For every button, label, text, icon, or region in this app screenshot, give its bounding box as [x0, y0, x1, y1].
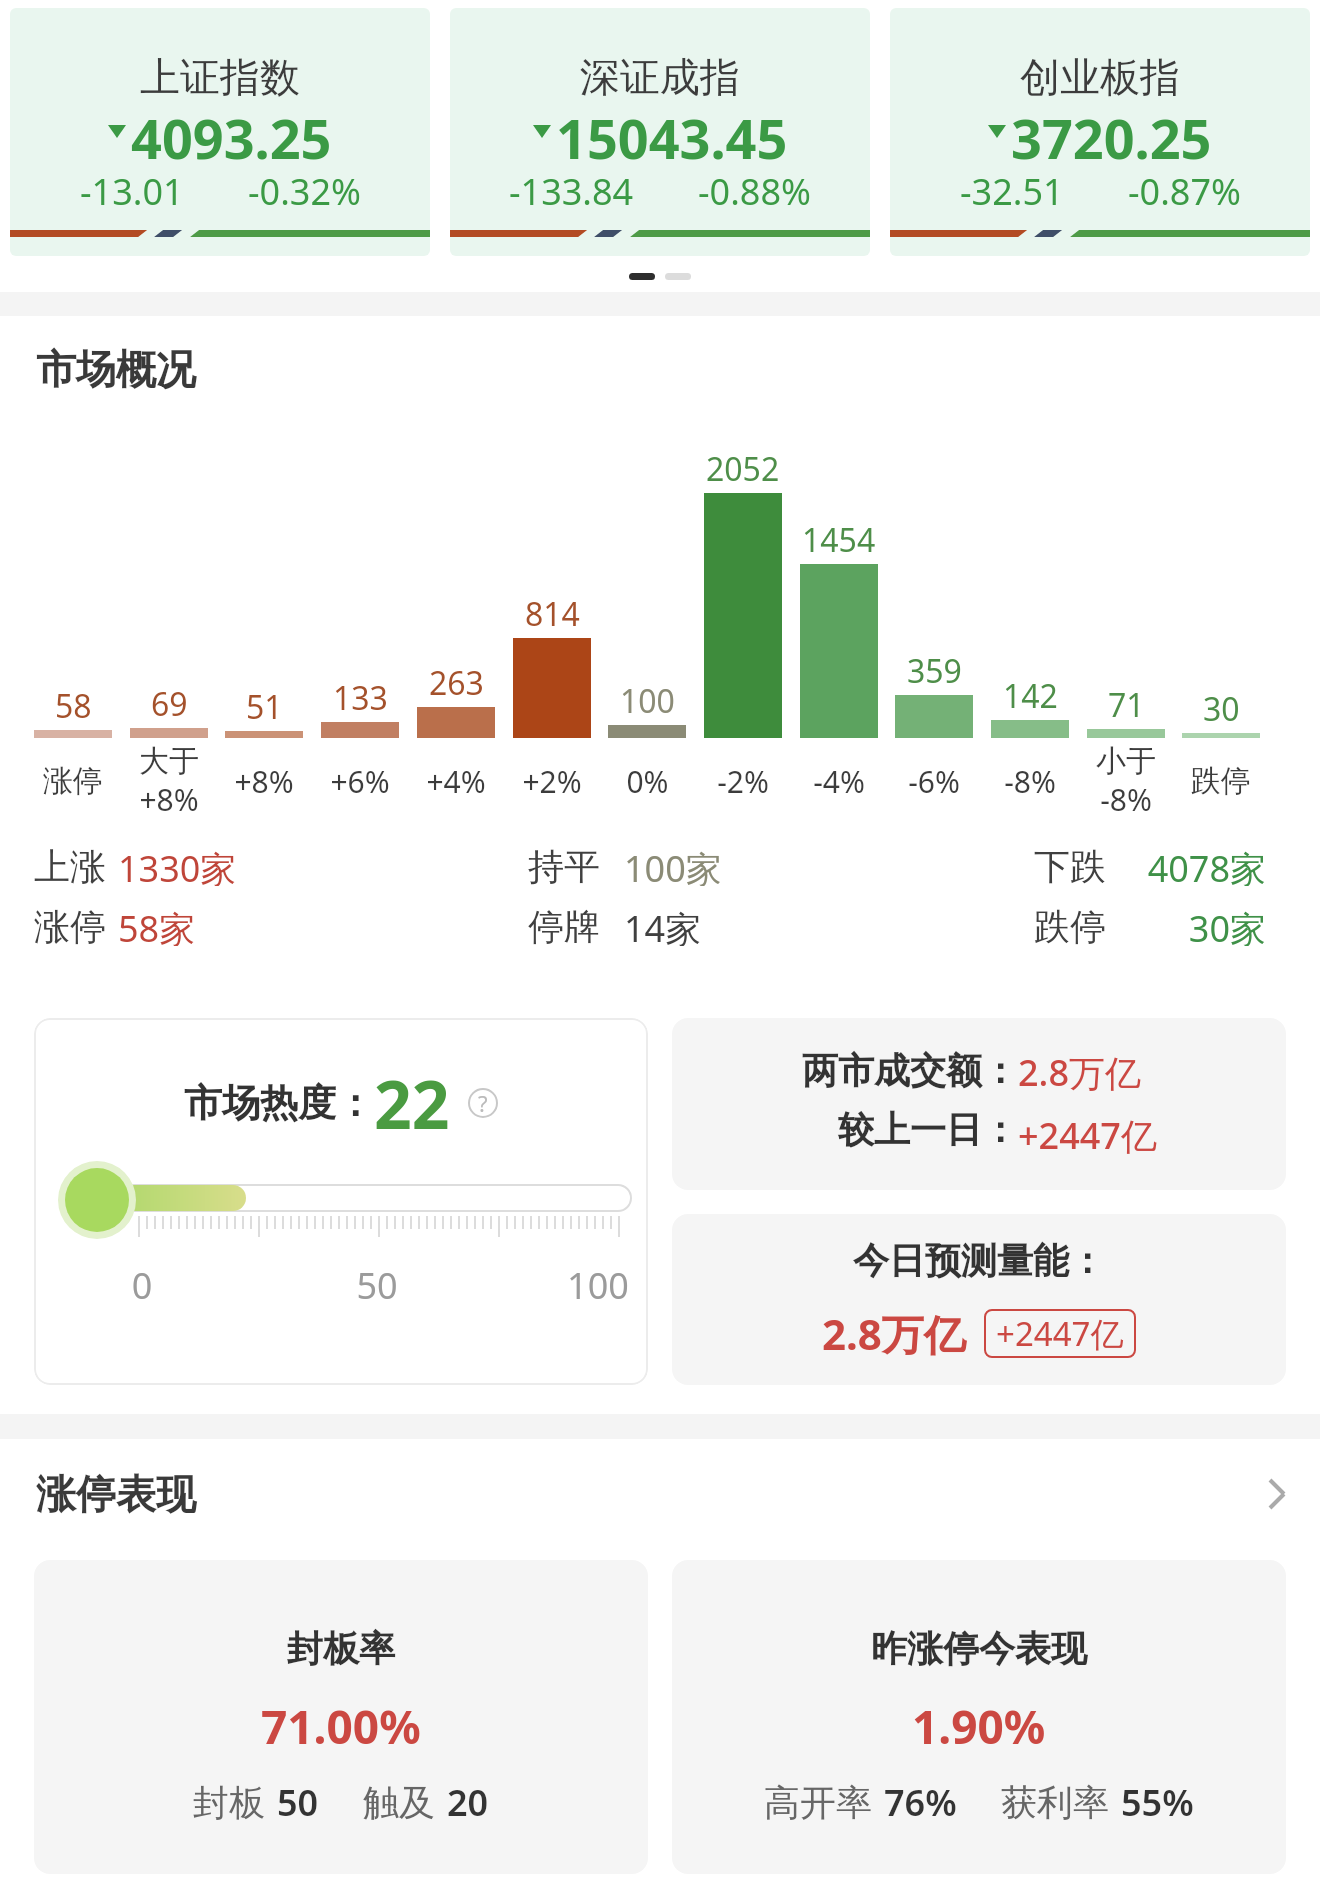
staticText: 涨停: [43, 762, 103, 800]
staticText: -4%: [813, 761, 865, 802]
staticText: 1.90%: [912, 1695, 1046, 1758]
staticText: 58家: [118, 904, 196, 946]
staticText: 4078家: [1106, 844, 1266, 886]
staticText: 触及: [363, 1780, 435, 1825]
staticText: 50: [277, 1778, 319, 1827]
staticText: 55%: [1121, 1778, 1194, 1827]
staticText: 深证成指: [580, 52, 740, 102]
staticText: 封板: [193, 1780, 265, 1825]
staticText: -6%: [908, 761, 960, 802]
staticText: 814: [525, 592, 580, 636]
staticText: 20: [447, 1778, 489, 1827]
button[interactable]: 封板率: [34, 1560, 648, 1874]
staticText: +6%: [330, 761, 390, 802]
staticText: 100: [528, 1261, 648, 1310]
staticText: 142: [1003, 674, 1058, 718]
staticText: -8%: [1004, 761, 1056, 802]
staticText: 较上一日：: [838, 1107, 1018, 1152]
staticText: 高开率: [764, 1780, 872, 1825]
staticText: 30: [1203, 687, 1240, 731]
staticText: 71.00%: [261, 1695, 421, 1758]
staticText: 50: [307, 1261, 447, 1310]
staticText: 2.8万亿: [822, 1305, 966, 1362]
staticText: -13.01: [80, 167, 184, 216]
button[interactable]: 创业板指: [890, 8, 1310, 256]
staticText: 两市成交额：: [802, 1048, 1018, 1093]
staticText: 4093.25: [131, 101, 332, 161]
staticText: +2447亿: [1018, 1111, 1157, 1160]
staticText: 昨涨停今表现: [871, 1626, 1087, 1671]
staticText: 获利率: [1001, 1780, 1109, 1825]
staticText: 跌停: [1191, 762, 1251, 800]
staticText: 2.8万亿: [1018, 1048, 1141, 1097]
staticText: 30家: [1106, 904, 1266, 946]
staticText: 持平: [528, 844, 600, 886]
staticText: +2%: [522, 761, 582, 802]
button[interactable]: 上证指数: [10, 8, 430, 256]
staticText: -0.87%: [1128, 167, 1241, 216]
staticText: 跌停: [1034, 904, 1106, 946]
staticText: 0%: [626, 761, 669, 802]
staticText: -133.84: [509, 167, 634, 216]
staticText: 15043.45: [556, 101, 788, 161]
staticText: 0: [107, 1261, 177, 1310]
staticText: 涨停表现: [36, 1469, 196, 1519]
staticText: +8%: [234, 761, 294, 802]
staticText: 市场热度：: [184, 1079, 374, 1127]
staticText: 1330家: [118, 844, 237, 886]
staticText: 71: [1108, 683, 1145, 727]
staticText: 封板率: [287, 1626, 395, 1671]
button[interactable]: 市场热度：: [34, 1018, 648, 1385]
staticText: -0.88%: [698, 167, 811, 216]
button[interactable]: 昨涨停今表现: [672, 1560, 1286, 1874]
staticText: +4%: [426, 761, 486, 802]
button[interactable]: 涨停表现: [34, 1469, 1286, 1519]
staticText: 359: [907, 649, 962, 693]
staticText: 市场概况: [36, 344, 196, 394]
staticText: 76%: [884, 1778, 957, 1827]
button[interactable]: 今日预测量能：: [672, 1214, 1286, 1385]
staticText: 上证指数: [140, 52, 300, 102]
staticText: 下跌: [1034, 844, 1106, 886]
staticText: 大于 +8%: [139, 742, 199, 820]
staticText: 今日预测量能：: [853, 1238, 1105, 1283]
button[interactable]: 深证成指: [450, 8, 870, 256]
staticText: 小于 -8%: [1096, 742, 1156, 820]
staticText: 69: [151, 682, 188, 726]
staticText: 停牌: [528, 904, 600, 946]
staticText: ?: [478, 1088, 488, 1118]
staticText: -32.51: [960, 167, 1064, 216]
staticText: 上涨: [34, 844, 106, 886]
staticText: 2052: [706, 447, 780, 491]
staticText: 1454: [802, 518, 876, 562]
staticText: 创业板指: [1020, 52, 1180, 102]
staticText: 133: [333, 676, 388, 720]
staticText: 263: [429, 661, 484, 705]
staticText: 100家: [624, 844, 722, 886]
staticText: 3720.25: [1011, 101, 1212, 161]
staticText: 22: [374, 1058, 450, 1148]
staticText: 100: [620, 679, 675, 723]
button[interactable]: 两市成交额：: [672, 1018, 1286, 1190]
staticText: 14家: [624, 904, 702, 946]
staticText: 51: [246, 685, 283, 729]
staticText: -0.32%: [248, 167, 361, 216]
staticText: -2%: [717, 761, 769, 802]
staticText: 58: [55, 684, 92, 728]
staticText: 涨停: [34, 904, 106, 946]
staticText: +2447亿: [996, 1311, 1124, 1356]
